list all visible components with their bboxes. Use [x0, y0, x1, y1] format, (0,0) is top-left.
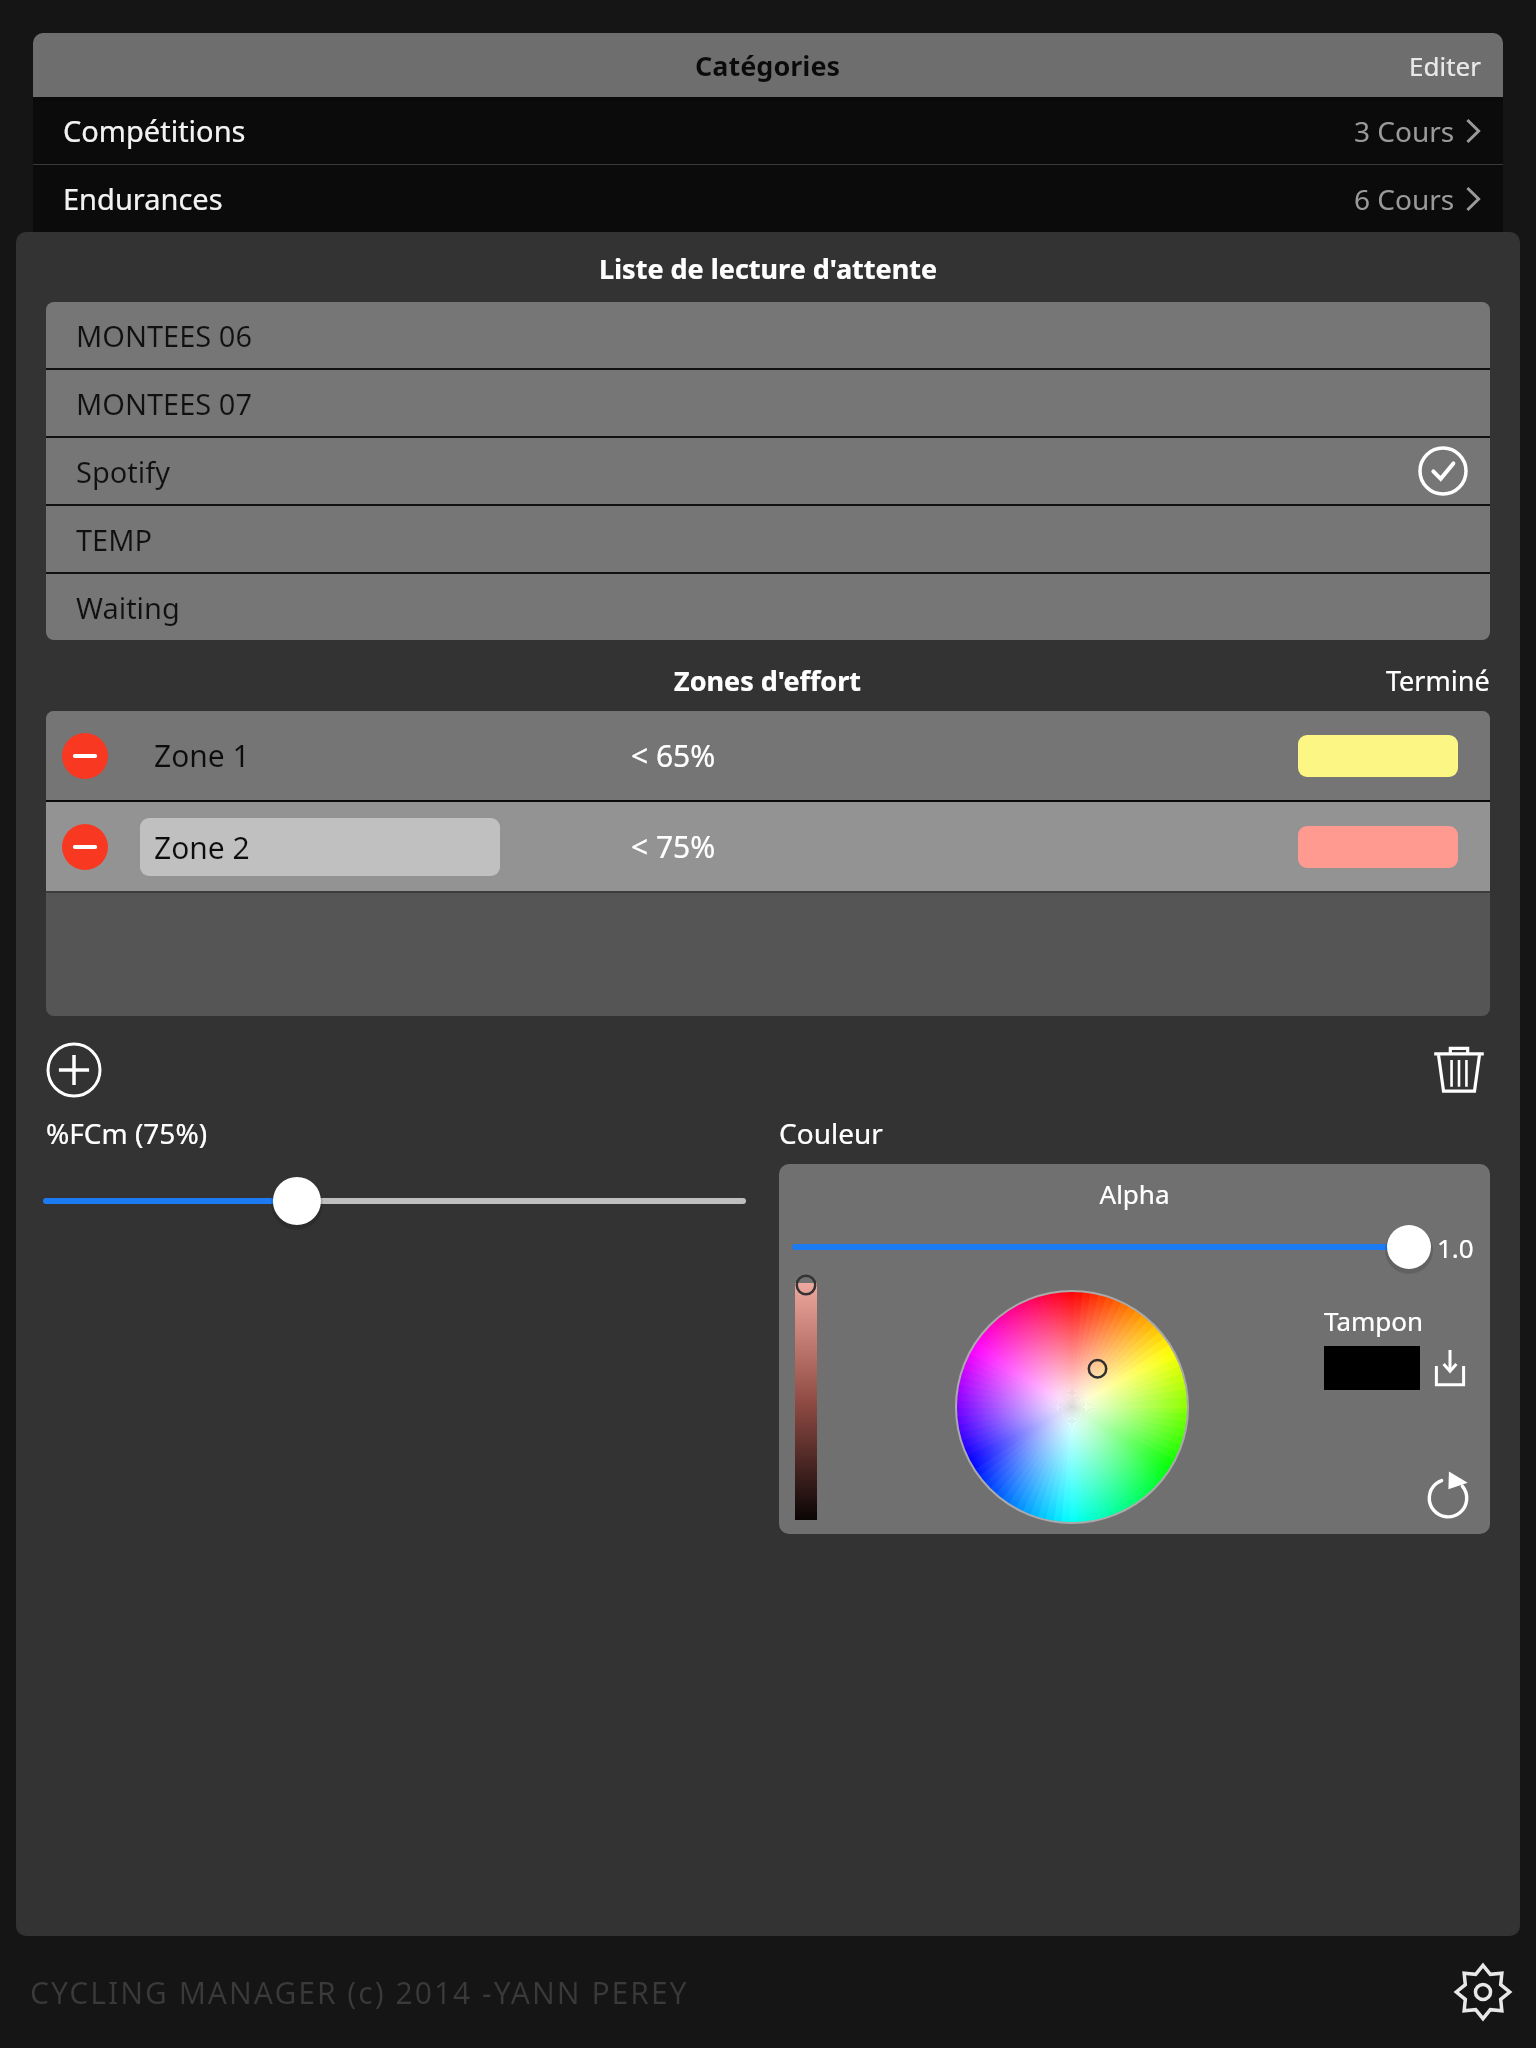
staticText: Zone 2 [154, 827, 250, 868]
staticText: TEMP [76, 520, 153, 559]
button[interactable]: Terminé [1386, 662, 1490, 699]
staticText: Waiting [76, 588, 180, 627]
button[interactable]: Roue de couleurs [956, 1291, 1188, 1523]
staticText: Compétitions [63, 111, 246, 150]
staticText: Zones d'effort [674, 662, 862, 699]
button[interactable]: Enregistrer la couleur [1430, 1348, 1470, 1388]
button[interactable]: Ajouter une zone [46, 1042, 102, 1098]
staticText: %FCm (75%) [46, 1114, 208, 1152]
button[interactable]: MONTEES 07 [46, 370, 1490, 436]
staticText: < 65% [631, 735, 716, 776]
staticText: Spotify [76, 452, 171, 491]
staticText: CYCLING MANAGER (c) 2014 -YANN PEREY [30, 1972, 689, 2013]
button[interactable]: Editer [1387, 34, 1503, 97]
button[interactable]: Paramètres [1454, 1963, 1512, 2021]
staticText: Catégories [695, 47, 841, 84]
staticText: Endurances [63, 179, 223, 218]
staticText: 1.0 [1437, 1230, 1474, 1265]
staticText: Tampon [1324, 1303, 1424, 1338]
button[interactable]: Spotify [46, 438, 1490, 504]
button[interactable]: Waiting [46, 574, 1490, 640]
staticText: 3 Cours [1354, 112, 1455, 150]
button[interactable]: MONTEES 06 [46, 302, 1490, 368]
button[interactable]: Réinitialiser [1422, 1468, 1474, 1520]
staticText: 6 Cours [1354, 180, 1455, 218]
staticText: < 75% [631, 826, 716, 867]
button[interactable]: Retirer Zone 2 [62, 824, 108, 870]
button[interactable]: Retirer Zone 2 [46, 802, 1490, 891]
staticText: Alpha [795, 1176, 1474, 1211]
button[interactable]: Supprimer [1428, 1039, 1490, 1101]
button[interactable]: Retirer Zone 1 [62, 733, 108, 779]
button[interactable]: Zone 2 [140, 818, 500, 876]
button[interactable]: TEMP [46, 506, 1490, 572]
button[interactable]: Couleur de Zone 2 [1298, 826, 1458, 868]
staticText: MONTEES 06 [76, 316, 253, 355]
staticText: Zone 1 [154, 735, 250, 776]
button[interactable]: Alpha [795, 1225, 1425, 1269]
staticText: Liste de lecture d'attente [16, 250, 1520, 287]
button[interactable]: Couleur de Zone 1 [1298, 735, 1458, 777]
button[interactable]: Retirer Zone 1 [46, 711, 1490, 800]
staticText: MONTEES 07 [76, 384, 253, 423]
staticText: Couleur [779, 1114, 883, 1152]
button[interactable]: Endurances [33, 165, 1503, 232]
button[interactable]: Pourcentage FCm [46, 1174, 743, 1228]
staticText: Editer [1409, 48, 1481, 83]
button[interactable]: Compétitions [33, 97, 1503, 164]
staticText: Terminé [1386, 662, 1490, 699]
